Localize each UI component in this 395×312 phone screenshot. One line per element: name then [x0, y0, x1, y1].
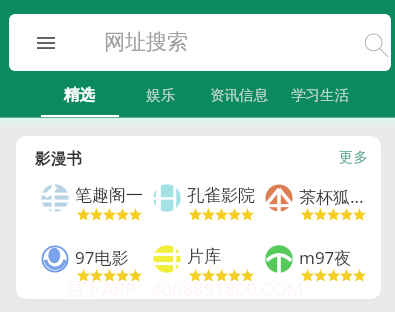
button[interactable]: 资讯信息: [205, 80, 273, 110]
button[interactable]: 茶杯狐...: [265, 183, 371, 227]
button[interactable]: 笔趣阁一: [41, 183, 147, 227]
staticText: 孔雀影院: [187, 185, 255, 206]
staticText: 97电影: [75, 246, 129, 269]
button[interactable]: Menu: [9, 14, 391, 71]
staticText: m97夜: [299, 246, 352, 269]
staticText: 易下APP · 4008891800.COM: [65, 276, 304, 299]
button[interactable]: 精选: [45, 80, 113, 110]
staticText: 精选: [64, 85, 95, 105]
button[interactable]: 孔雀影院: [153, 183, 259, 227]
staticText: 片库: [187, 246, 221, 267]
button[interactable]: 片库: [153, 244, 259, 288]
staticText: 学习生活: [291, 86, 349, 104]
button[interactable]: Menu: [28, 25, 64, 61]
staticText: 资讯信息: [210, 86, 268, 104]
button[interactable]: 更多: [328, 144, 378, 170]
staticText: 网址搜索: [104, 29, 188, 55]
button[interactable]: m97夜: [265, 244, 371, 288]
button[interactable]: Search: [357, 26, 391, 60]
staticText: 娱乐: [146, 86, 175, 104]
button[interactable]: 97电影: [41, 244, 147, 288]
staticText: 茶杯狐...: [299, 185, 364, 208]
staticText: 影漫书: [35, 149, 83, 169]
staticText: 笔趣阁一: [75, 185, 143, 206]
button[interactable]: 学习生活: [286, 80, 354, 110]
button[interactable]: 娱乐: [126, 80, 194, 110]
staticText: 更多: [339, 148, 368, 166]
